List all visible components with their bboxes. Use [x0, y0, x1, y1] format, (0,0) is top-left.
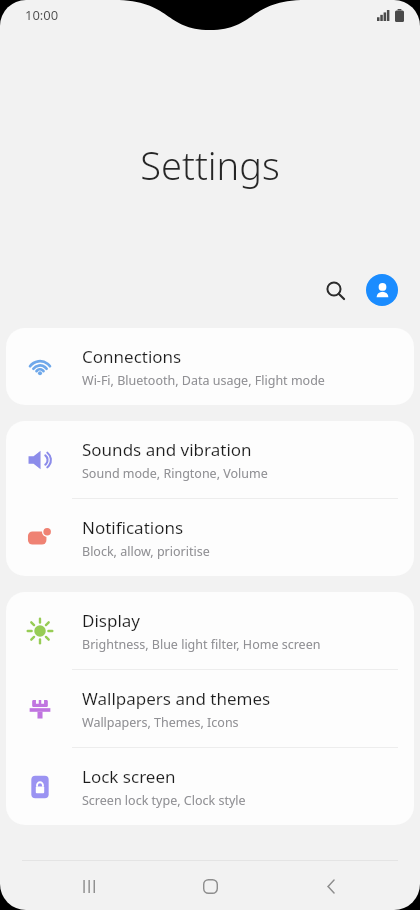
- staticText: Notifications: [82, 516, 184, 539]
- button[interactable]: Recents: [57, 864, 121, 908]
- staticText: Settings: [0, 139, 420, 191]
- staticText: Display: [82, 609, 140, 632]
- staticText: Sounds and vibration: [82, 438, 252, 461]
- staticText: Block, allow, prioritise: [82, 543, 210, 560]
- button[interactable]: Connections: [6, 328, 414, 405]
- staticText: Sound mode, Ringtone, Volume: [82, 465, 268, 482]
- button[interactable]: Lock screen: [6, 748, 414, 825]
- button[interactable]: Sounds and vibration: [6, 421, 414, 498]
- staticText: Connections: [82, 345, 182, 368]
- staticText: Lock screen: [82, 765, 176, 788]
- staticText: Wallpapers and themes: [82, 687, 271, 710]
- button[interactable]: Home: [178, 864, 242, 908]
- button[interactable]: Notifications: [6, 499, 414, 576]
- button[interactable]: Profile: [366, 274, 398, 306]
- button[interactable]: Back: [299, 864, 363, 908]
- staticText: 10:00: [25, 6, 59, 24]
- staticText: Brightness, Blue light filter, Home scre…: [82, 636, 321, 653]
- button[interactable]: Search: [314, 269, 356, 311]
- staticText: Screen lock type, Clock style: [82, 792, 246, 809]
- button[interactable]: Display: [6, 592, 414, 669]
- staticText: Wallpapers, Themes, Icons: [82, 714, 239, 731]
- staticText: Wi-Fi, Bluetooth, Data usage, Flight mod…: [82, 372, 325, 389]
- button[interactable]: Wallpapers and themes: [6, 670, 414, 747]
